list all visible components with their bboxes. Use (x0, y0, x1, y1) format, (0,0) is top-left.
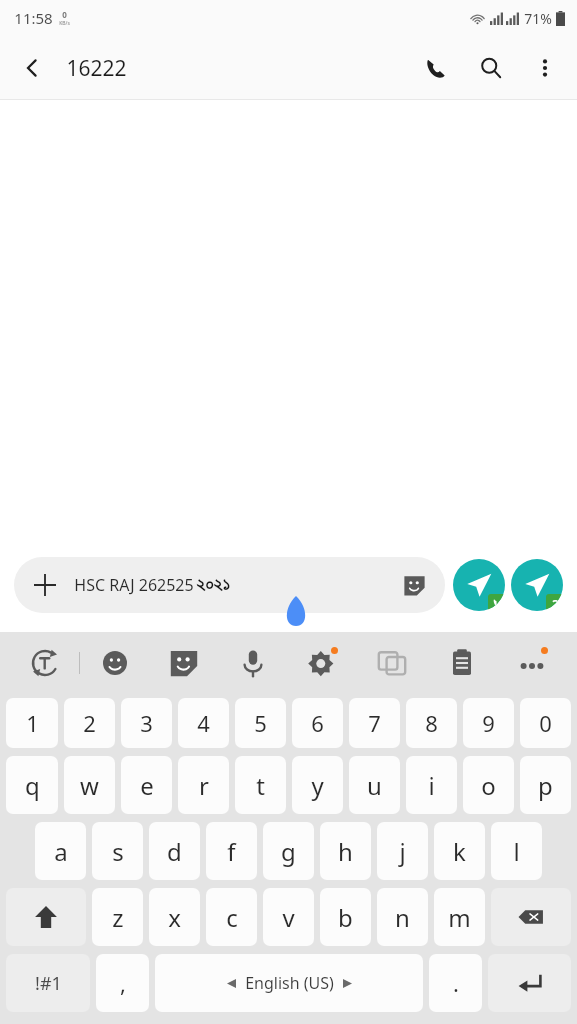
button[interactable]: q (6, 756, 58, 814)
button[interactable]: a (35, 822, 86, 880)
staticText: x (168, 901, 181, 934)
staticText: l (513, 835, 520, 868)
staticText: 16222 (66, 54, 127, 83)
button[interactable]: !#1 (6, 954, 90, 1012)
button[interactable]: Voice input (218, 632, 287, 694)
staticText: f (227, 835, 236, 868)
staticText: m (448, 901, 471, 934)
button[interactable]: 5 (235, 698, 286, 748)
button[interactable]: g (263, 822, 314, 880)
staticText: . (453, 968, 459, 998)
button[interactable]: 7 (349, 698, 400, 748)
button[interactable]: k (434, 822, 485, 880)
button[interactable]: o (463, 756, 514, 814)
staticText: v (282, 901, 295, 934)
staticText: 5 (254, 708, 267, 738)
staticText: 6 (311, 708, 324, 738)
button[interactable]: 2 (64, 698, 115, 748)
button[interactable]: More (497, 632, 567, 694)
button[interactable]: 8 (406, 698, 457, 748)
button[interactable]: j (377, 822, 428, 880)
button[interactable]: 3 (121, 698, 172, 748)
staticText: 8 (425, 708, 438, 738)
button[interactable]: Back (8, 44, 56, 92)
staticText: a (54, 835, 68, 868)
staticText: s (112, 835, 124, 868)
button[interactable]: w (64, 756, 115, 814)
button[interactable]: Emoji (80, 632, 149, 694)
staticText: y (311, 769, 324, 802)
button[interactable]: Send SIM 2 (511, 559, 563, 611)
button[interactable]: 6 (292, 698, 343, 748)
button[interactable]: 4 (178, 698, 229, 748)
button[interactable]: s (92, 822, 143, 880)
staticText: w (80, 769, 99, 802)
staticText: 4 (197, 708, 210, 738)
button[interactable]: Clipboard (427, 632, 497, 694)
button[interactable]: c (206, 888, 257, 946)
staticText: p (538, 769, 553, 802)
staticText: o (481, 769, 496, 802)
button[interactable]: 0 (520, 698, 571, 748)
button[interactable]: f (206, 822, 257, 880)
button[interactable]: m (434, 888, 485, 946)
button[interactable]: Add attachment (28, 568, 62, 602)
button[interactable]: r (178, 756, 229, 814)
button[interactable]: Text extraction (357, 632, 427, 694)
button[interactable]: Send SIM 1 (453, 559, 505, 611)
button[interactable]: 9 (463, 698, 514, 748)
button[interactable]: l (491, 822, 542, 880)
button[interactable]: e (121, 756, 172, 814)
button[interactable]: Settings (287, 632, 357, 694)
staticText: 0 (62, 9, 67, 20)
staticText: b (338, 901, 353, 934)
button[interactable]: d (149, 822, 200, 880)
staticText: English (US) (245, 972, 334, 994)
staticText: i (428, 769, 435, 802)
button[interactable]: b (320, 888, 371, 946)
button[interactable]: n (377, 888, 428, 946)
staticText: 0 (539, 708, 552, 738)
button[interactable]: . (429, 954, 482, 1012)
button[interactable]: Translate (10, 632, 79, 694)
staticText: 1 (26, 708, 39, 738)
button[interactable]: x (149, 888, 200, 946)
button[interactable]: , (96, 954, 149, 1012)
button[interactable]: i (406, 756, 457, 814)
staticText: HSC RAJ 262525 (72, 574, 196, 596)
button[interactable]: More options (521, 44, 569, 92)
staticText: g (281, 835, 296, 868)
staticText: e (140, 769, 154, 802)
staticText: 11:58 (14, 8, 53, 28)
button[interactable]: Search (467, 44, 515, 92)
staticText: , (120, 968, 126, 998)
staticText: n (395, 901, 410, 934)
staticText: 71% (524, 9, 552, 28)
button[interactable]: p (520, 756, 571, 814)
staticText: h (338, 835, 353, 868)
button[interactable]: t (235, 756, 286, 814)
staticText: !#1 (35, 971, 62, 996)
button[interactable]: y (292, 756, 343, 814)
button[interactable]: Add attachment (14, 557, 445, 613)
button[interactable]: 1 (6, 698, 58, 748)
staticText: ২০২১ (196, 576, 230, 594)
button[interactable]: Enter (488, 954, 571, 1012)
button[interactable]: Stickers (397, 568, 431, 602)
staticText: z (112, 901, 124, 934)
staticText: 7 (368, 708, 381, 738)
button[interactable]: English (US) (155, 954, 423, 1012)
button[interactable]: h (320, 822, 371, 880)
button[interactable]: Stickers (149, 632, 218, 694)
button[interactable]: z (92, 888, 143, 946)
staticText: t (256, 769, 265, 802)
button[interactable]: u (349, 756, 400, 814)
button[interactable]: Shift (6, 888, 86, 946)
staticText: 2 (83, 708, 96, 738)
staticText: k (453, 835, 466, 868)
button[interactable]: v (263, 888, 314, 946)
button[interactable]: Backspace (491, 888, 571, 946)
button[interactable]: Call (411, 44, 459, 92)
staticText: q (25, 769, 40, 802)
staticText: KB/s (59, 20, 70, 27)
